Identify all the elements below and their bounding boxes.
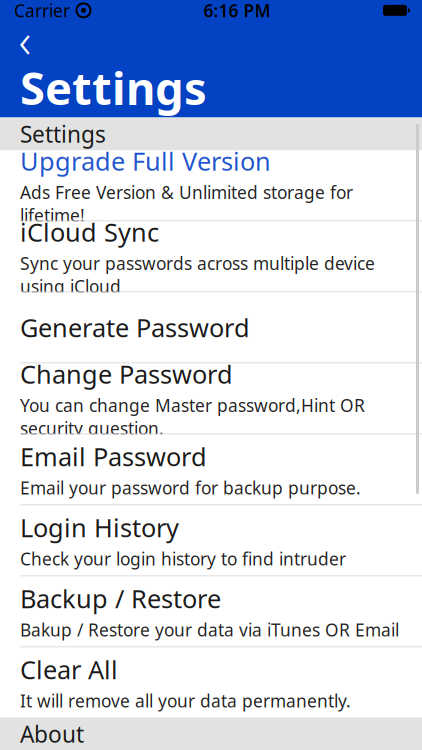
staticText: Bakup / Restore your data via iTunes OR … [20, 618, 399, 641]
button[interactable]: Email Password [0, 434, 422, 504]
staticText: You can change Master password,Hint OR s… [20, 394, 365, 440]
staticText: Check your login history to find intrude… [20, 547, 346, 570]
staticText: Carrier [14, 0, 70, 22]
staticText: Generate Password [20, 311, 250, 344]
button[interactable]: Clear All [0, 647, 422, 717]
staticText: Sync your passwords across multiple devi… [20, 252, 375, 298]
staticText: Email your password for backup purpose. [20, 476, 361, 499]
staticText: About [20, 719, 84, 749]
staticText: It will remove all your data permanently… [20, 689, 351, 712]
staticText: ‹ [18, 7, 31, 71]
staticText: Login History [20, 511, 179, 544]
button[interactable]: Back [2, 21, 48, 57]
staticText: Ads Free Version & Unlimited storage for… [20, 181, 353, 227]
staticText: Settings [20, 57, 207, 118]
staticText: iCloud Sync [20, 215, 159, 249]
button[interactable]: Backup / Restore [0, 576, 422, 646]
button[interactable]: Login History [0, 505, 422, 575]
staticText: Settings [20, 119, 106, 149]
staticText: Email Password [20, 440, 207, 473]
staticText: 6:16 PM [203, 0, 270, 22]
staticText: Change Password [20, 357, 233, 391]
button[interactable]: Upgrade Full Version [0, 150, 422, 220]
staticText: Upgrade Full Version [20, 144, 271, 178]
button[interactable]: iCloud Sync [0, 221, 422, 291]
button[interactable]: Change Password [0, 363, 422, 433]
staticText: Clear All [20, 653, 118, 686]
button[interactable]: Generate Password [0, 292, 422, 362]
staticText: Backup / Restore [20, 582, 221, 615]
